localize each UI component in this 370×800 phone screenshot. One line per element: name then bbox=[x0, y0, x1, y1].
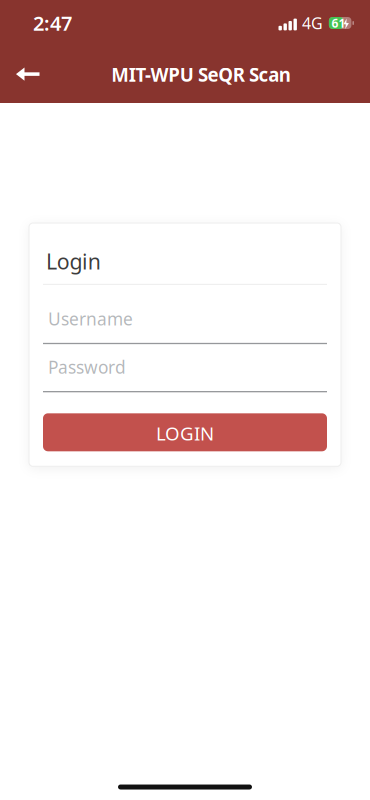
staticText: Login bbox=[46, 247, 101, 275]
button[interactable]: Username bbox=[43, 307, 327, 344]
staticText: MIT-WPU SeQR Scan bbox=[111, 62, 291, 87]
staticText: Password bbox=[48, 355, 126, 378]
button[interactable]: Back bbox=[0, 53, 40, 95]
button[interactable]: Password bbox=[43, 355, 327, 392]
staticText: 2:47 bbox=[33, 10, 72, 36]
staticText: Username bbox=[48, 307, 133, 330]
staticText: 61 bbox=[331, 15, 345, 31]
staticText: 4G bbox=[302, 12, 323, 34]
button[interactable]: LOGIN bbox=[43, 413, 327, 451]
staticText: LOGIN bbox=[156, 421, 214, 446]
